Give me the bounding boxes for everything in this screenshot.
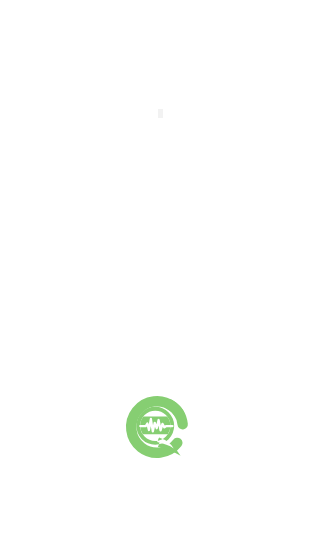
button[interactable]: App logo <box>126 396 188 458</box>
